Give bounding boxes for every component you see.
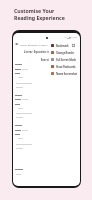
button[interactable]: Share (49, 42, 53, 46)
button[interactable]: Back (15, 42, 19, 46)
staticText: Customise Your (14, 7, 55, 14)
staticText: Full Screen Mode (56, 58, 76, 62)
staticText: Name Screenshot (56, 72, 78, 76)
staticText: Linear Equation in One Variable (13, 50, 80, 54)
staticText: ••• ▂▄ 100% (64, 36, 78, 39)
button[interactable]: Name Screenshot (49, 70, 80, 77)
staticText: Change Reader Voice (56, 51, 78, 55)
button[interactable]: Change Reader Voice (49, 49, 80, 56)
button[interactable]: Bookmark (49, 42, 80, 49)
staticText: Reading Experience (14, 14, 65, 21)
staticText: Show Flashcards (56, 65, 76, 69)
staticText: Exercise (13, 58, 80, 62)
button[interactable]: Full Screen Mode (49, 56, 80, 63)
staticText: Bookmark (56, 44, 69, 48)
staticText: Linear Equation in One V (20, 43, 48, 46)
button[interactable]: Show Flashcards (49, 63, 80, 70)
